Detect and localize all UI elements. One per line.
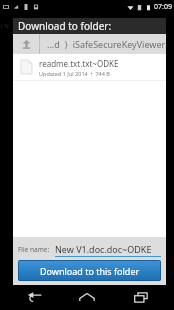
button[interactable]: readme.txt.txt~ODKE: [13, 54, 166, 80]
staticText: ...d ⟩ iSafeSecureKeyViewer: [47, 38, 166, 50]
staticText: New V1.doc.doc~ODKE: [55, 243, 152, 255]
button[interactable]: Up one level: [13, 34, 39, 54]
button[interactable]: New V1.doc.doc~ODKE: [55, 241, 161, 257]
button[interactable]: Recent apps: [121, 285, 161, 310]
staticText: ( N: [1, 22, 9, 30]
staticText: Download to this folder: [40, 265, 140, 277]
staticText: Download to folder:: [18, 19, 112, 33]
button[interactable]: Download to this folder: [18, 260, 161, 281]
staticText: File name:: [18, 245, 50, 254]
staticText: readme.txt.txt~ODKE: [39, 58, 119, 69]
button[interactable]: Up one level: [13, 34, 166, 54]
staticText: 07:09: [154, 2, 172, 12]
staticText: Updated 1 Jul 2014 • 744 B: [39, 70, 110, 77]
button[interactable]: Home: [67, 285, 107, 310]
button[interactable]: Back: [14, 285, 54, 310]
